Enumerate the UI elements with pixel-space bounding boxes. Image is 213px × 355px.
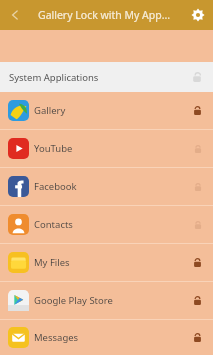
staticText: System Applications bbox=[9, 71, 99, 84]
button[interactable]: Back bbox=[0, 0, 30, 30]
button[interactable]: Gallery bbox=[0, 92, 213, 129]
button[interactable]: YouTube bbox=[0, 130, 213, 167]
staticText: Google Play Store bbox=[34, 294, 113, 307]
button[interactable]: My Files bbox=[0, 244, 213, 281]
staticText: Gallery bbox=[34, 104, 66, 117]
staticText: My Files bbox=[34, 256, 70, 269]
button[interactable]: Google Play Store bbox=[0, 282, 213, 319]
staticText: Facebook bbox=[34, 180, 77, 193]
button[interactable]: Messages bbox=[0, 320, 213, 355]
button[interactable]: Settings bbox=[183, 0, 213, 30]
staticText: Messages bbox=[34, 331, 79, 344]
button[interactable]: System Applications bbox=[0, 62, 213, 92]
button[interactable]: Contacts bbox=[0, 206, 213, 243]
staticText: YouTube bbox=[34, 142, 73, 155]
staticText: Gallery Lock with My App... bbox=[38, 8, 171, 22]
button[interactable]: Facebook bbox=[0, 168, 213, 205]
staticText: Contacts bbox=[34, 218, 73, 231]
